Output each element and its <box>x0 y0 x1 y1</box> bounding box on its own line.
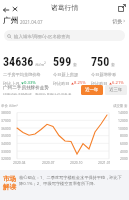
staticText: 2021.01 <box>98 160 111 165</box>
staticText: 36000 <box>1 126 11 131</box>
staticText: 8000 <box>120 133 128 138</box>
staticText: 32000 <box>1 156 11 161</box>
button[interactable]: 近一年 <box>81 85 103 95</box>
staticText: 套 <box>73 62 77 67</box>
staticText: 单价 元/m² <box>1 103 18 108</box>
staticText: 2000 <box>120 156 128 161</box>
staticText: 8.25% <box>74 80 86 86</box>
staticText: 近三年 <box>109 87 123 93</box>
staticText: 0.33% <box>24 80 36 86</box>
staticText: 6000 <box>120 141 128 146</box>
staticText: 34000 <box>1 141 11 146</box>
staticText: 4000 <box>120 149 128 154</box>
staticText: 元/m² <box>35 62 46 67</box>
staticText: 二手房平均挂牌价格 <box>3 72 41 77</box>
staticText: 广州二手房挂牌价走势 <box>3 85 49 91</box>
staticText: 599 <box>53 55 72 69</box>
staticText: 33000 <box>1 149 11 154</box>
staticText: 34636 <box>3 55 34 69</box>
staticText: 2020.04 <box>13 160 26 165</box>
staticText: 750 <box>91 55 110 69</box>
staticText: 35000 <box>1 133 11 138</box>
button[interactable]: 输入城市/商圈/小区名称查询 <box>4 30 125 41</box>
staticText: 市场 解读 <box>3 175 16 191</box>
staticText: 切换 <box>112 18 122 24</box>
staticText: 6.21% <box>112 80 124 86</box>
staticText: 2021.04.07 <box>20 19 43 25</box>
staticText: 2020.07 <box>42 160 55 165</box>
staticText: 12000 <box>118 118 128 123</box>
staticText: 10000 <box>118 126 128 131</box>
staticText: 环比昨日 <box>53 81 70 86</box>
staticText: 成交量 套 <box>113 103 128 108</box>
staticText: 今日新上房源 <box>53 72 79 77</box>
staticText: 环比上月 <box>3 81 20 86</box>
button[interactable]: Close <box>11 5 19 13</box>
staticText: 诸葛行情 <box>51 3 79 12</box>
button[interactable]: Share <box>118 4 126 12</box>
staticText: 广州 <box>3 16 18 25</box>
staticText: 38000 <box>1 110 11 115</box>
staticText: 核心观点：1、二季度写字楼租金水平保持平稳，环比下降0.1%；2、甲级写字楼空置… <box>19 175 126 186</box>
staticText: 环比昨日 <box>91 81 108 86</box>
staticText: 37000 <box>1 118 11 123</box>
staticText: 套 <box>111 62 115 67</box>
staticText: 14000 <box>118 110 128 115</box>
button[interactable]: 市场 解读 <box>3 175 126 200</box>
button[interactable]: 近三年 <box>105 85 127 95</box>
staticText: 近一年 <box>85 87 99 93</box>
staticText: 2020.10 <box>70 160 83 165</box>
button[interactable]: 切换 <box>112 18 126 24</box>
staticText: 今日新增带看 <box>91 72 117 77</box>
staticText: 输入城市/商圈/小区名称查询 <box>14 33 70 39</box>
button[interactable]: Back <box>1 5 11 15</box>
staticText: 挂牌均价走势曲线，数据分月统计仅供参考 <box>3 93 72 95</box>
